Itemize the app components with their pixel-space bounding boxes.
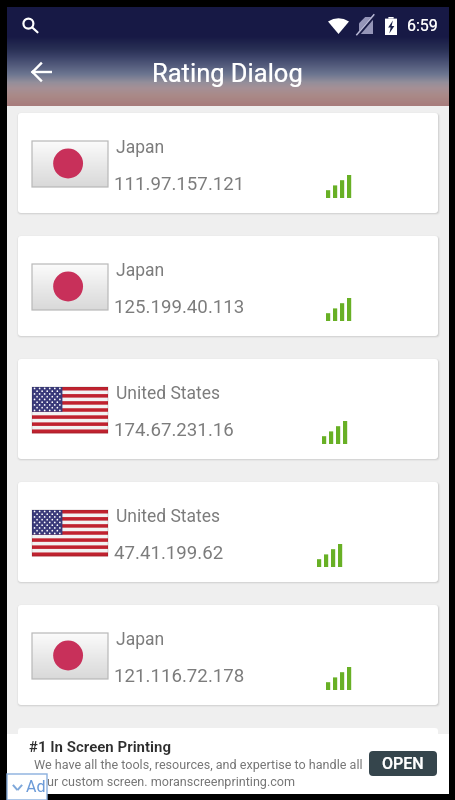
staticText: 111.97.157.121 [114,173,245,195]
staticText: Rating Dialog [152,58,303,88]
staticText: United States [116,383,221,404]
button[interactable]: Japan [18,236,438,336]
staticText: Japan [116,260,165,281]
button[interactable]: Japan [18,113,438,213]
staticText: Japan [116,137,165,158]
staticText: #1 In Screen Printing [29,738,172,756]
staticText: 121.116.72.178 [114,665,245,687]
button[interactable]: United States [18,359,438,459]
staticText: We have all the tools, resources, and ex… [34,757,363,772]
button[interactable]: Back [25,55,59,89]
button[interactable]: OPEN [369,751,437,776]
staticText: United States [116,506,221,527]
staticText: 6:59 [407,16,438,35]
staticText: Ad [26,777,46,796]
staticText: OPEN [382,754,424,773]
staticText: 174.67.231.16 [114,419,234,441]
button[interactable]: #1 In Screen Printing [7,734,449,794]
button[interactable]: Ad choices info [7,774,47,800]
staticText: 47.41.199.62 [114,542,224,564]
staticText: your custom screen. moranscreenprinting.… [34,774,296,789]
staticText: 125.199.40.113 [114,296,245,318]
button[interactable]: Search [15,10,45,40]
button[interactable]: Japan [18,605,438,705]
staticText: Japan [116,629,165,650]
button[interactable]: United States [18,482,438,582]
